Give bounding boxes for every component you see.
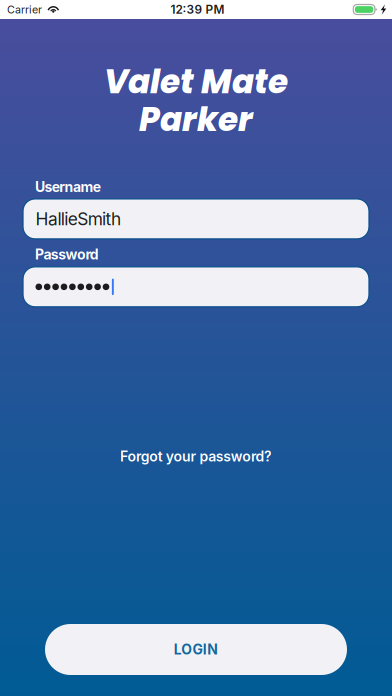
staticText: 12:39 PM	[170, 2, 224, 17]
staticText: LOGIN	[174, 641, 218, 658]
staticText: Carrier	[7, 3, 42, 16]
button[interactable]: LOGIN	[45, 624, 347, 675]
button[interactable]: Forgot your password?	[108, 442, 284, 471]
staticText: Password	[35, 246, 99, 263]
staticText: Username	[35, 178, 101, 195]
staticText: HallieSmith	[35, 208, 121, 229]
staticText: Forgot your password?	[120, 448, 272, 465]
staticText: Parker	[139, 97, 253, 142]
button[interactable]: Username field	[23, 199, 369, 239]
staticText: Valet Mate	[104, 59, 288, 105]
button[interactable]: Password field	[23, 267, 369, 307]
